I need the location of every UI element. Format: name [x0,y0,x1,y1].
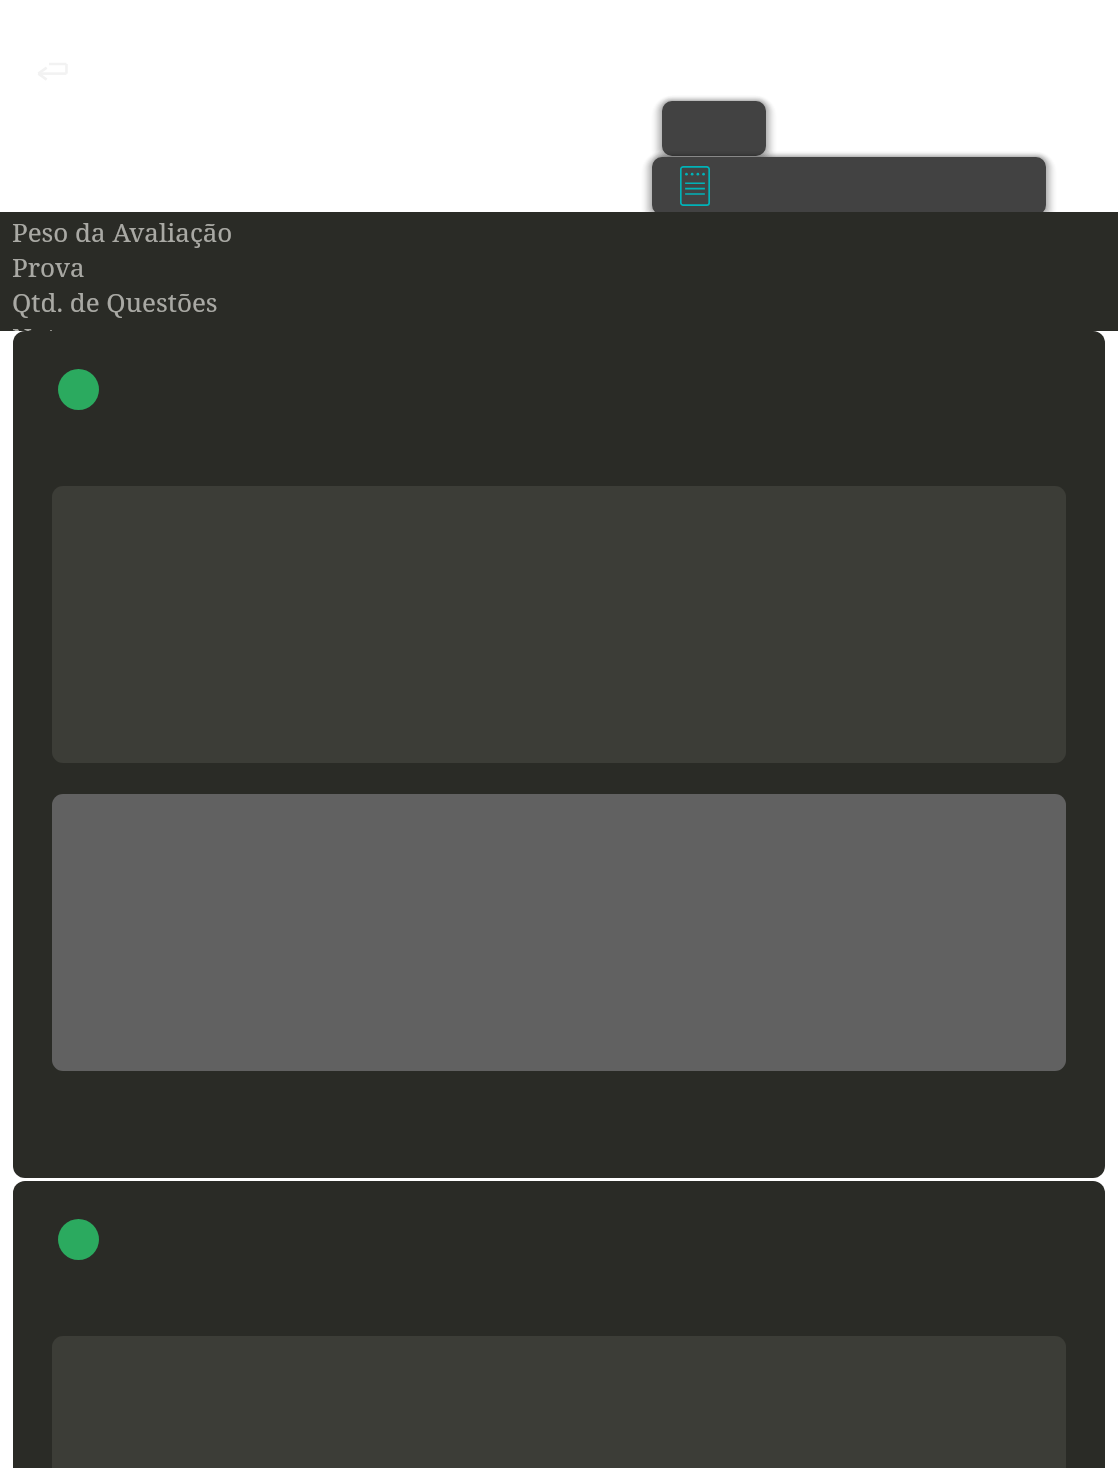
staticText: Qtd. de Questões [12,284,218,319]
button[interactable]: Back [33,58,71,88]
button[interactable] [13,1181,1105,1468]
button[interactable] [662,101,766,156]
button[interactable] [13,331,1105,1178]
staticText: Nota [12,319,71,331]
staticText: Peso da Avaliação [12,214,233,249]
other: Assessment [680,166,710,206]
staticText: Prova [12,249,85,284]
button[interactable]: Assessment [652,157,1046,215]
